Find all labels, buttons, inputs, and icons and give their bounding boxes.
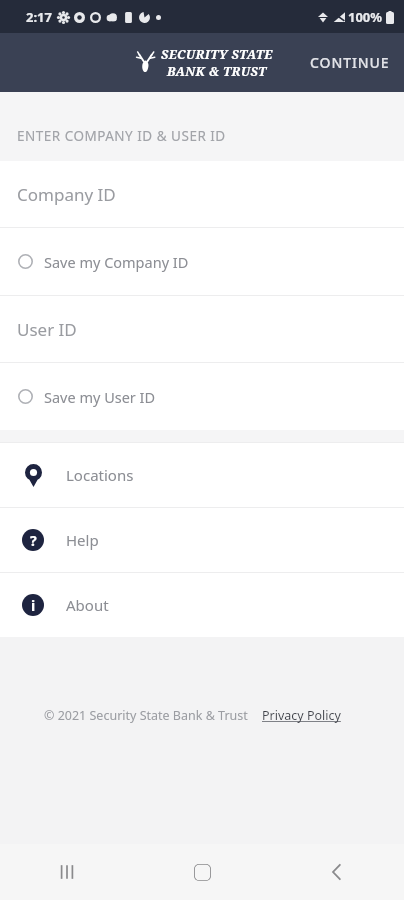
staticText: Privacy Policy bbox=[262, 707, 341, 724]
staticText: About bbox=[66, 595, 109, 615]
staticText: i bbox=[31, 596, 36, 615]
staticText: Save my User ID bbox=[44, 387, 156, 407]
button[interactable]: Save my Company ID bbox=[0, 228, 404, 295]
button[interactable]: Recent apps bbox=[43, 848, 91, 896]
staticText: SECURITY STATE bbox=[161, 46, 273, 63]
button[interactable]: Privacy Policy bbox=[262, 707, 341, 724]
button[interactable]: i bbox=[0, 573, 404, 637]
staticText: 100% bbox=[348, 8, 383, 26]
staticText: User ID bbox=[17, 318, 77, 341]
button[interactable]: User ID bbox=[0, 296, 404, 362]
staticText: Company ID bbox=[17, 183, 116, 206]
staticText: © 2021 Security State Bank & Trust bbox=[44, 707, 248, 724]
staticText: 2:17 bbox=[26, 8, 52, 26]
button[interactable]: CONTINUE bbox=[296, 39, 404, 86]
staticText: Locations bbox=[66, 465, 134, 485]
staticText: Help bbox=[66, 530, 99, 550]
staticText: Save my Company ID bbox=[44, 252, 189, 272]
button[interactable]: Save my User ID bbox=[0, 363, 404, 430]
button[interactable]: Company ID bbox=[0, 161, 404, 227]
button[interactable]: Home bbox=[178, 848, 226, 896]
staticText: ENTER COMPANY ID & USER ID bbox=[17, 127, 226, 145]
button[interactable]: Locations bbox=[0, 443, 404, 507]
staticText: ? bbox=[30, 531, 37, 550]
button[interactable]: Back bbox=[313, 848, 361, 896]
button[interactable]: ? bbox=[0, 508, 404, 572]
staticText: CONTINUE bbox=[310, 53, 390, 72]
staticText: BANK & TRUST bbox=[167, 63, 267, 80]
